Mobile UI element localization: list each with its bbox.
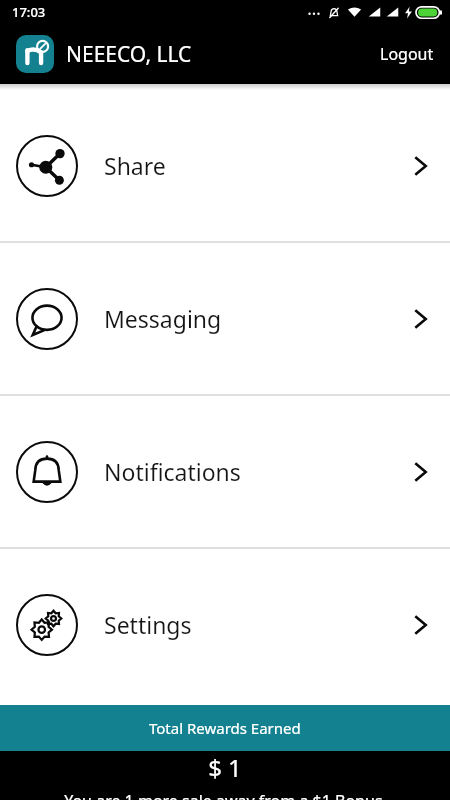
staticText: Total Rewards Earned [149,718,301,738]
staticText: You are 1 more sale away from a $1 Bonus… [64,790,387,800]
staticText: Messaging [104,303,222,334]
staticText: Notifications [104,456,241,487]
button[interactable]: Share [0,90,450,241]
staticText: Share [104,150,166,181]
staticText: 17:03 [12,3,46,21]
staticText: Logout [380,43,434,65]
button[interactable]: Logout [364,31,450,77]
staticText: NEEECO, LLC [66,40,192,69]
button[interactable]: Settings [0,549,450,700]
button[interactable]: Messaging [0,243,450,394]
staticText: $ 1 [208,751,242,784]
staticText: Settings [104,609,192,640]
button[interactable]: Notifications [0,396,450,547]
button[interactable]: Total Rewards Earned [0,705,450,751]
